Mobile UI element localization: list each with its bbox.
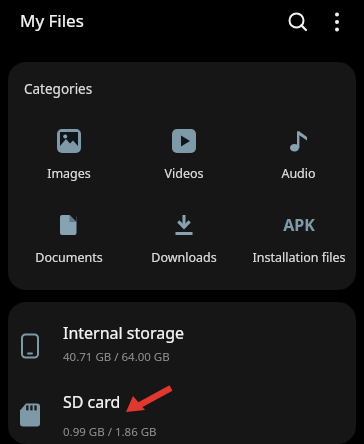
staticText: Videos [164,165,204,182]
button[interactable]: Downloads [126,211,241,266]
staticText: 40.71 GB / 64.00 GB [63,349,170,365]
button[interactable]: SD card [8,382,356,444]
staticText: Images [47,165,91,182]
button[interactable] [282,6,314,38]
staticText: My Files [20,9,84,32]
staticText: APK [275,214,323,236]
button[interactable]: Audio [241,127,356,182]
staticText: Downloads [151,249,217,266]
staticText: 0.99 GB / 1.86 GB [63,424,157,440]
staticText: Documents [35,249,103,266]
staticText: Internal storage [63,322,185,344]
button[interactable]: Documents [11,211,126,266]
staticText: Categories [24,80,93,98]
button[interactable]: APK [241,211,356,266]
button[interactable]: Videos [126,127,241,182]
button[interactable]: Internal storage [8,312,356,379]
staticText: Audio [281,165,316,182]
button[interactable]: Images [11,127,126,182]
staticText: Installation files [252,249,346,266]
staticText: SD card [63,391,121,413]
button[interactable] [323,8,351,36]
